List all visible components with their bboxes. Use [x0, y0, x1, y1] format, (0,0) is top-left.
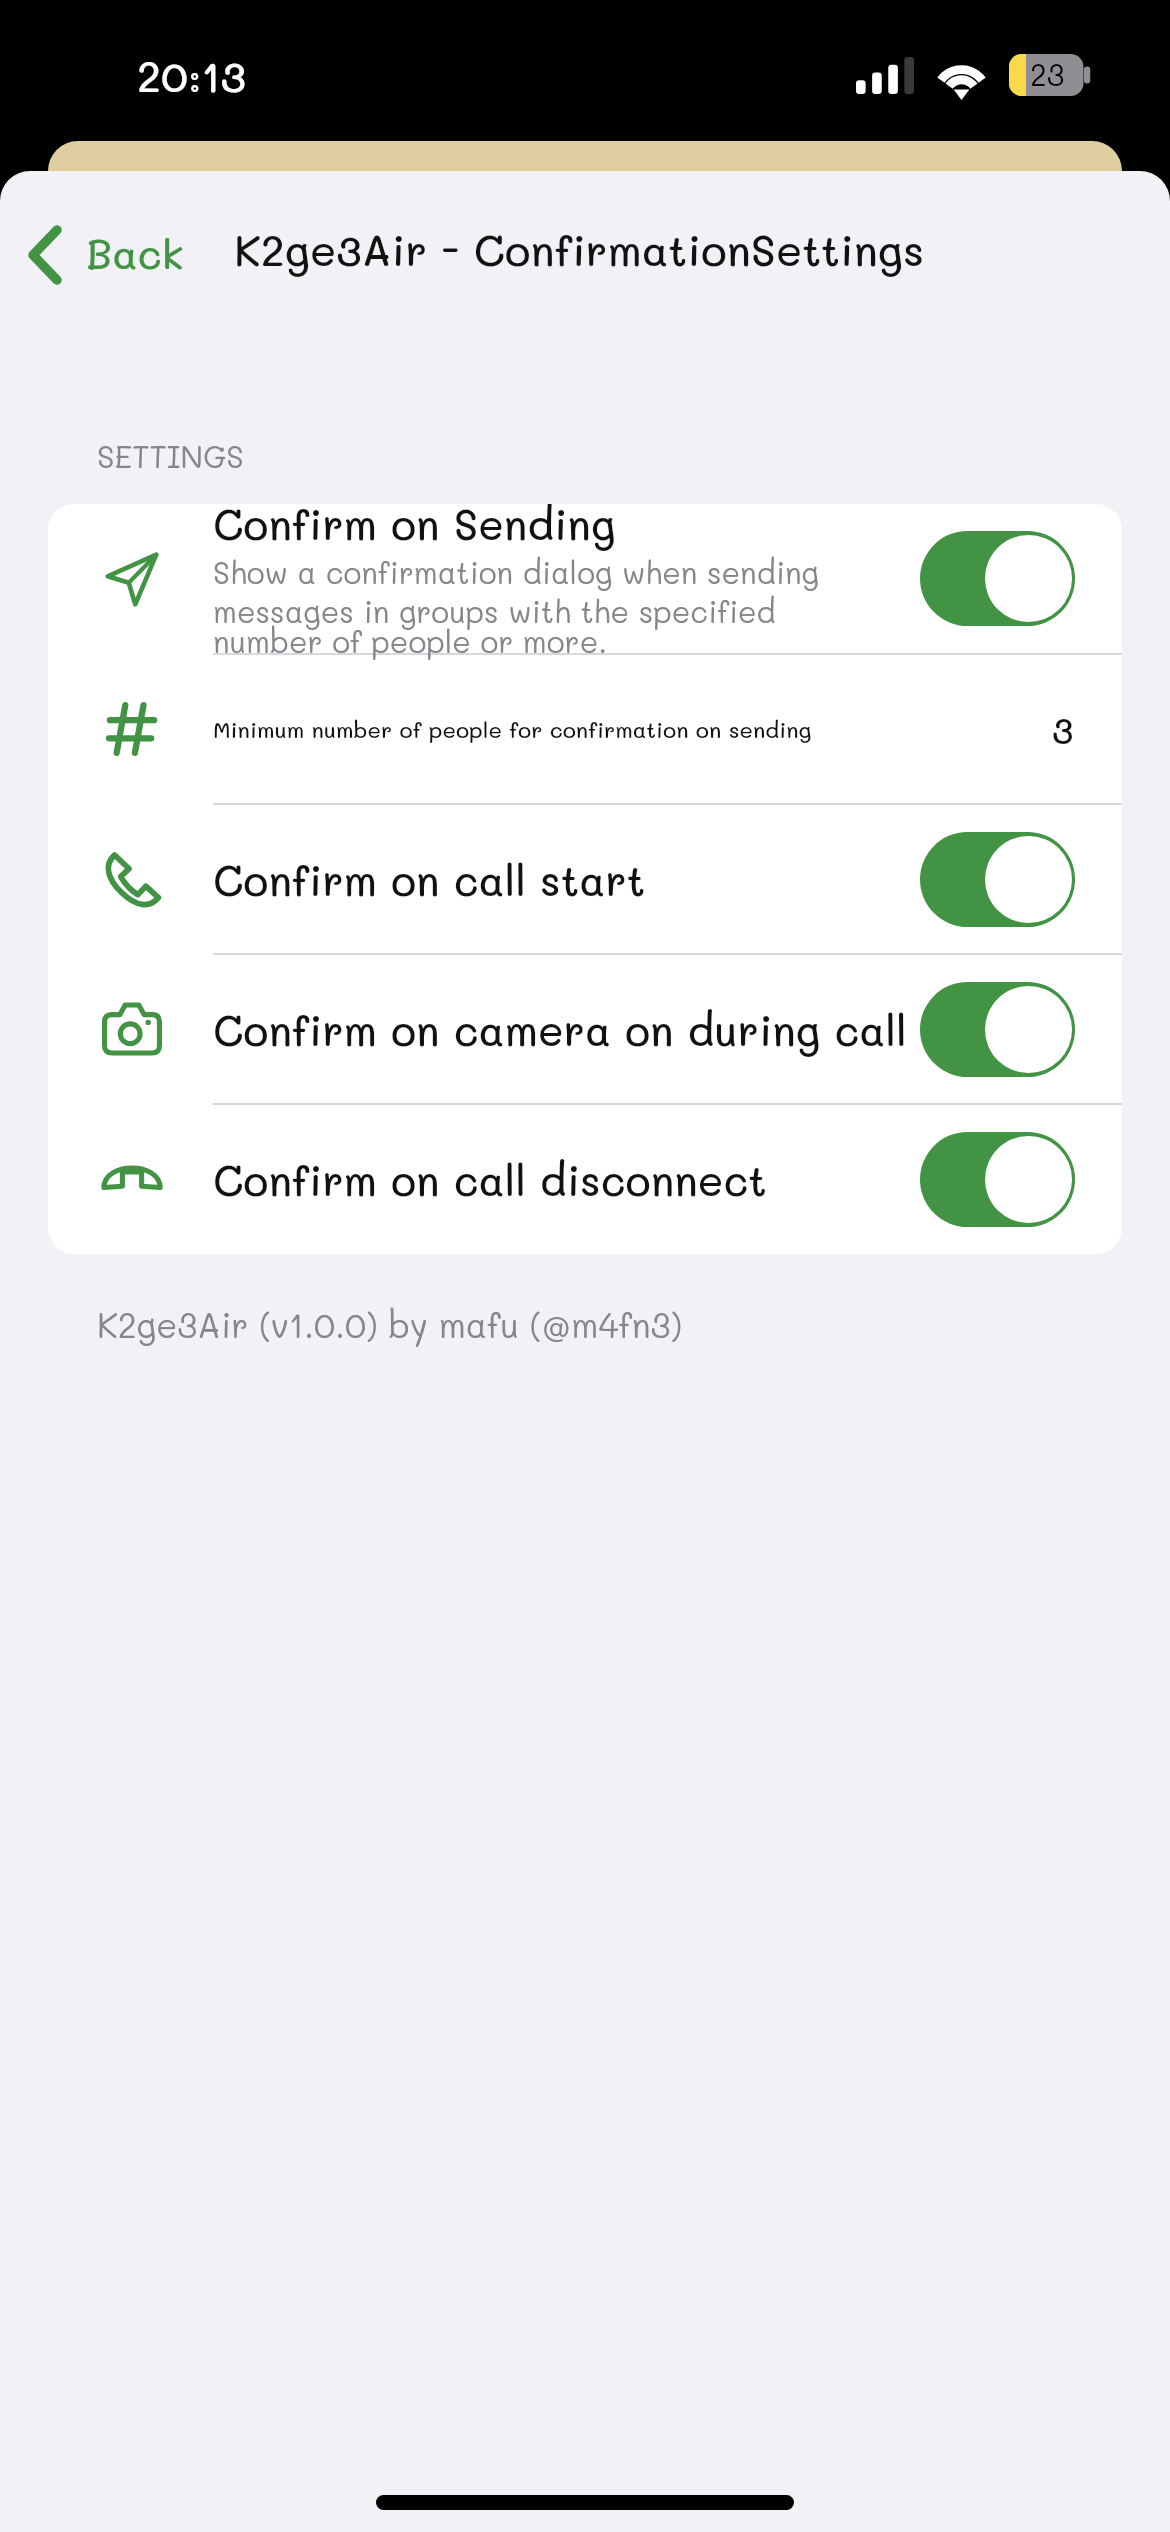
- button[interactable]: Confirm on call disconnect: [48, 1105, 1122, 1254]
- button[interactable]: Toggle on: [920, 531, 1075, 626]
- button[interactable]: Confirm on Sending: [48, 504, 1122, 653]
- staticText: Confirm on camera on during call: [213, 1002, 907, 1057]
- staticText: K2ge3Air (v1.0.0) by mafu (@m4fn3): [97, 1302, 682, 1346]
- staticText: 20:13: [137, 47, 246, 103]
- button[interactable]: Toggle on: [920, 1132, 1075, 1227]
- button[interactable]: Toggle on: [920, 982, 1075, 1077]
- staticText: Show a confirmation dialog when sending: [213, 553, 819, 592]
- button[interactable]: Back: [0, 207, 194, 291]
- staticText: Back: [86, 226, 184, 279]
- staticText: number of people or more.: [213, 622, 608, 661]
- button[interactable]: Minimum number of people for confirmatio…: [48, 655, 1122, 803]
- staticText: Minimum number of people for confirmatio…: [213, 715, 812, 744]
- staticText: messages in groups with the specified: [213, 592, 776, 631]
- staticText: K2ge3Air - ConfirmationSettings: [234, 221, 925, 277]
- staticText: SETTINGS: [97, 435, 244, 475]
- staticText: Confirm on Sending: [213, 504, 616, 551]
- staticText: Confirm on call disconnect: [213, 1152, 767, 1207]
- button[interactable]: Confirm on camera on during call: [48, 955, 1122, 1103]
- staticText: Confirm on call start: [213, 852, 646, 907]
- staticText: 23: [1030, 55, 1065, 94]
- button[interactable]: Confirm on call start: [48, 805, 1122, 953]
- button[interactable]: Toggle on: [920, 832, 1075, 927]
- staticText: 3: [1052, 706, 1074, 753]
